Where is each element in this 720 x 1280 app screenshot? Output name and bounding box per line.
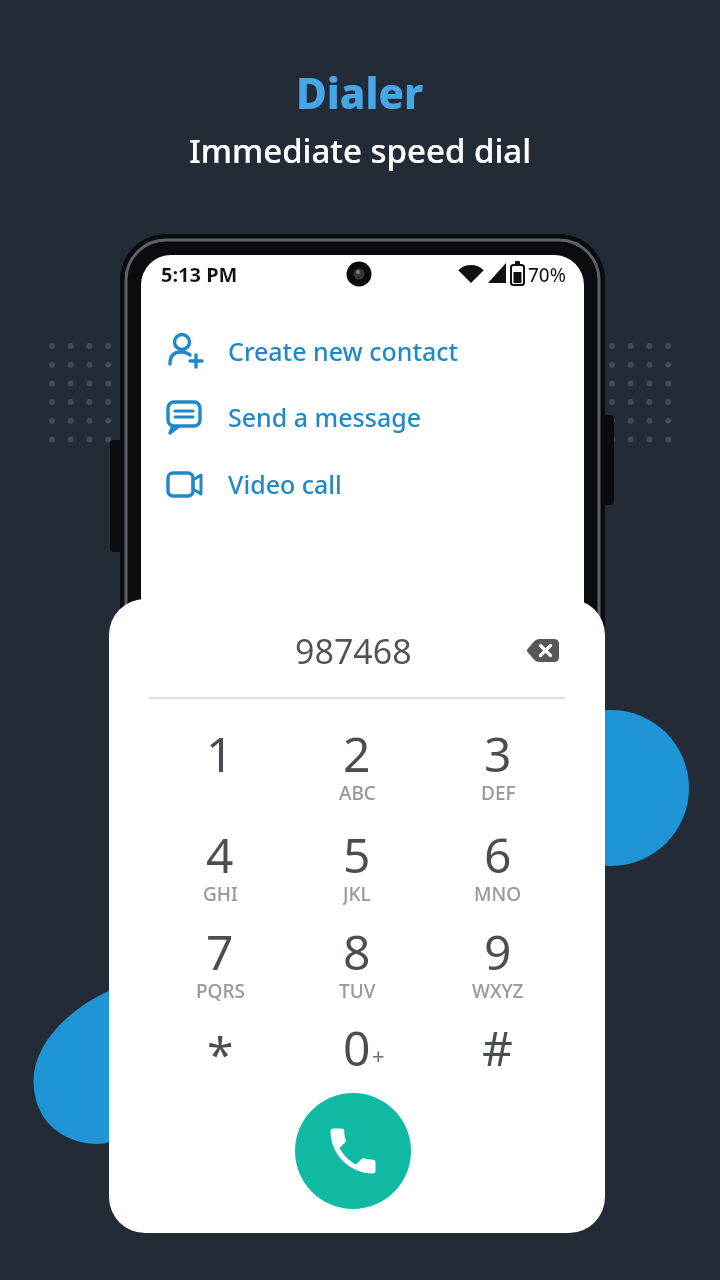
- button[interactable]: 1: [156, 719, 284, 787]
- button[interactable]: 9: [434, 917, 562, 985]
- button[interactable]: Create new contact: [166, 324, 576, 378]
- staticText: 8: [343, 919, 371, 984]
- button[interactable]: #: [434, 1013, 562, 1081]
- button[interactable]: 2: [293, 719, 421, 787]
- staticText: 0: [343, 1015, 371, 1080]
- button[interactable]: 5: [293, 820, 421, 888]
- staticText: 6: [484, 822, 512, 887]
- button[interactable]: Send a message: [166, 390, 576, 444]
- staticText: *: [207, 1021, 234, 1086]
- staticText: ABC: [339, 780, 376, 804]
- button[interactable]: 4: [156, 820, 284, 888]
- button[interactable]: 7: [156, 917, 284, 985]
- staticText: 3: [484, 721, 512, 786]
- staticText: JKL: [343, 881, 371, 905]
- staticText: PQRS: [196, 978, 245, 1002]
- staticText: GHI: [203, 881, 238, 905]
- button[interactable]: 6: [434, 820, 562, 888]
- staticText: TUV: [339, 978, 376, 1002]
- staticText: DEF: [481, 780, 516, 804]
- staticText: 987468: [295, 628, 412, 668]
- button[interactable]: 8: [293, 917, 421, 985]
- staticText: WXYZ: [472, 978, 524, 1002]
- staticText: Create new contact: [228, 334, 459, 368]
- button[interactable]: 0: [293, 1013, 421, 1081]
- staticText: 70%: [528, 262, 566, 287]
- staticText: Immediate speed dial: [189, 128, 532, 172]
- button[interactable]: Video call: [166, 457, 576, 511]
- staticText: +: [372, 1040, 385, 1070]
- staticText: 2: [343, 721, 371, 786]
- staticText: 5:13 PM: [161, 261, 238, 288]
- button[interactable]: [295, 1093, 411, 1209]
- staticText: MNO: [474, 881, 522, 905]
- button[interactable]: 3: [434, 719, 562, 787]
- button[interactable]: [519, 631, 567, 669]
- button[interactable]: *: [156, 1019, 284, 1087]
- staticText: 9: [484, 919, 512, 984]
- staticText: Send a message: [228, 400, 422, 434]
- staticText: 5: [343, 822, 371, 887]
- staticText: Dialer: [296, 64, 424, 120]
- staticText: #: [482, 1015, 514, 1080]
- staticText: 4: [206, 822, 234, 887]
- staticText: 7: [206, 919, 234, 984]
- staticText: Video call: [228, 467, 342, 501]
- staticText: 1: [206, 721, 234, 786]
